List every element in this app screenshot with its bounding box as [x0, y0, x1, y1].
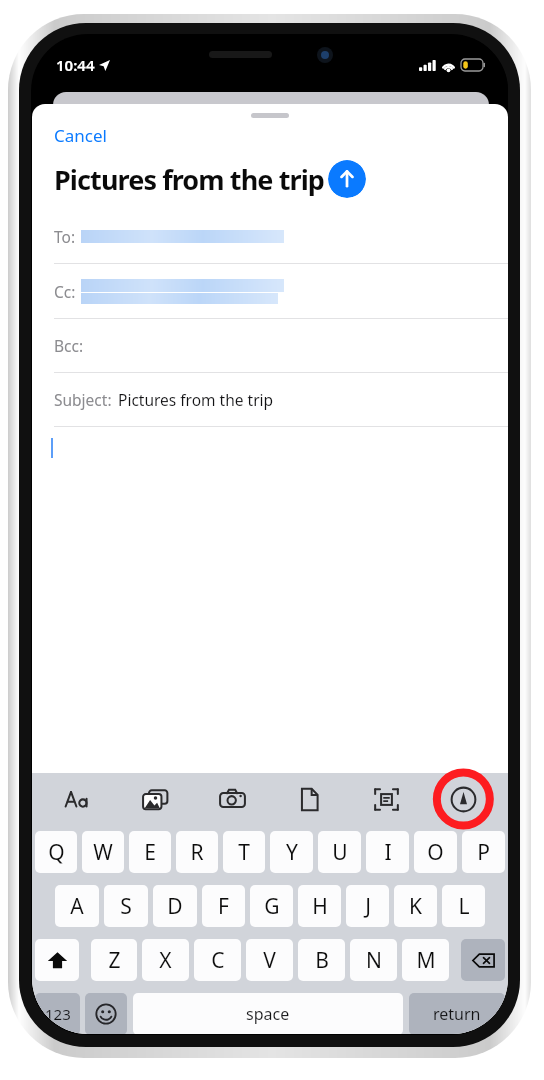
staticText: 10:44 [56, 55, 95, 75]
button[interactable]: Photos [116, 773, 194, 825]
staticText: Cc: [54, 281, 76, 302]
button[interactable]: H [298, 885, 341, 927]
staticText: space [246, 1003, 290, 1025]
button[interactable]: Y [270, 831, 313, 873]
button[interactable]: Emoji [85, 993, 127, 1034]
button[interactable]: F [202, 885, 245, 927]
button[interactable]: J [346, 885, 389, 927]
staticText: T [238, 838, 250, 867]
button[interactable]: L [442, 885, 485, 927]
staticText: M [416, 946, 436, 975]
staticText: A [70, 892, 84, 921]
staticText: 123 [45, 1004, 71, 1024]
staticText: N [366, 946, 382, 975]
button[interactable]: Camera [194, 773, 271, 825]
button[interactable]: P [462, 831, 505, 873]
staticText: B [315, 946, 329, 975]
staticText: K [409, 892, 422, 921]
button[interactable]: Shift [35, 939, 79, 981]
staticText: R [190, 838, 204, 867]
button[interactable]: Document [271, 773, 348, 825]
button[interactable]: Cancel [32, 119, 125, 152]
button[interactable]: N [350, 939, 397, 981]
staticText: P [477, 838, 490, 867]
staticText: Z [108, 946, 121, 975]
button[interactable]: Bcc: [32, 319, 508, 373]
button[interactable]: M [402, 939, 449, 981]
staticText: X [159, 946, 172, 975]
staticText: O [427, 838, 444, 867]
button[interactable]: B [298, 939, 345, 981]
staticText: Pictures from the trip [54, 161, 324, 198]
button[interactable]: Subject: [32, 373, 508, 427]
button[interactable]: U [318, 831, 361, 873]
staticText: Pictures from the trip [118, 389, 274, 410]
staticText: G [264, 892, 280, 921]
staticText: Bcc: [54, 335, 84, 356]
button[interactable]: C [194, 939, 241, 981]
staticText: return [433, 1003, 481, 1025]
staticText: To: [54, 226, 76, 247]
button[interactable]: O [414, 831, 457, 873]
button[interactable]: Q [35, 831, 77, 873]
staticText: Cancel [54, 124, 107, 147]
button[interactable]: Delete [461, 939, 505, 981]
button[interactable]: X [142, 939, 189, 981]
staticText: D [167, 892, 183, 921]
button[interactable]: D [153, 885, 197, 927]
staticText: F [218, 892, 229, 921]
staticText: H [312, 892, 328, 921]
button[interactable]: space [133, 993, 403, 1034]
staticText: I [384, 838, 392, 867]
button[interactable]: Scan [348, 773, 425, 825]
button[interactable]: A [55, 885, 99, 927]
button[interactable]: V [246, 939, 293, 981]
button[interactable]: R [176, 831, 218, 873]
staticText: Subject: [54, 389, 112, 410]
staticText: Y [286, 838, 298, 867]
staticText: Q [48, 838, 65, 867]
button[interactable]: Cc: [32, 264, 508, 319]
button[interactable]: Text format [38, 773, 116, 825]
button[interactable]: I [366, 831, 409, 873]
button[interactable]: G [250, 885, 293, 927]
staticText: J [365, 892, 371, 921]
button[interactable]: 123 [35, 993, 80, 1034]
staticText: W [93, 838, 113, 867]
staticText: V [263, 946, 276, 975]
staticText: S [120, 892, 132, 921]
button[interactable]: Send [328, 160, 366, 198]
button[interactable]: To: [32, 210, 508, 264]
staticText: E [144, 838, 156, 867]
button[interactable]: S [104, 885, 148, 927]
staticText: U [332, 838, 348, 867]
button[interactable]: return [409, 993, 505, 1034]
button[interactable]: Markup [425, 773, 502, 825]
staticText: L [458, 892, 470, 921]
button[interactable]: W [82, 831, 124, 873]
button[interactable]: K [394, 885, 437, 927]
button[interactable]: Z [91, 939, 137, 981]
staticText: C [211, 946, 225, 975]
button[interactable]: T [223, 831, 265, 873]
button[interactable]: E [129, 831, 171, 873]
